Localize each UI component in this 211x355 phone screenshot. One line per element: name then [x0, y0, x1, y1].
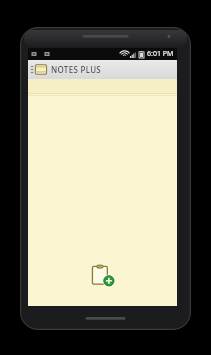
- button[interactable]: Open navigation menu: [28, 60, 177, 79]
- staticText: 6:01 PM: [147, 49, 174, 59]
- other: Open navigation menu: [30, 62, 48, 77]
- button[interactable]: Add a new note: [91, 264, 115, 288]
- staticText: NOTES PLUS: [51, 64, 102, 75]
